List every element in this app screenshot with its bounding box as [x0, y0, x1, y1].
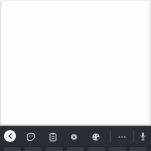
button[interactable]: [46, 130, 60, 144]
button[interactable]: [136, 130, 150, 144]
button[interactable]: [24, 130, 38, 144]
button[interactable]: [115, 130, 129, 144]
button[interactable]: [67, 130, 81, 144]
button[interactable]: [89, 130, 103, 144]
button[interactable]: [4, 130, 16, 142]
